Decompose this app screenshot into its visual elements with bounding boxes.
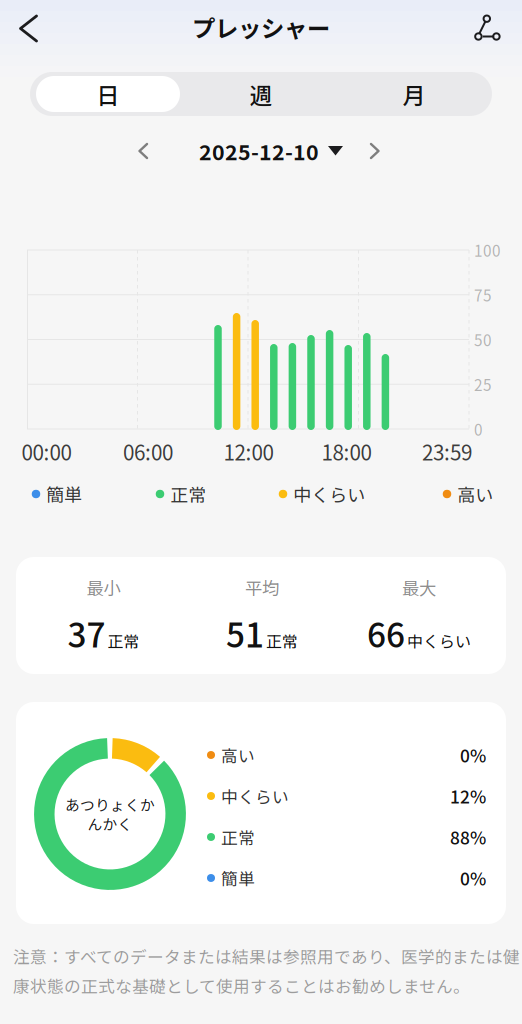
staticText: 0%	[460, 865, 486, 891]
staticText: 00:00	[21, 436, 71, 466]
staticText: 中くらい	[293, 481, 365, 507]
staticText: 日	[96, 78, 119, 110]
staticText: 中くらい	[221, 784, 289, 808]
staticText: 正常	[170, 481, 206, 507]
button[interactable]: Back	[4, 5, 50, 51]
staticText: 簡単	[221, 866, 255, 890]
staticText: 最大	[402, 575, 436, 600]
staticText: 66	[367, 609, 405, 657]
staticText: 12:00	[223, 436, 273, 466]
staticText: 75	[474, 284, 492, 306]
staticText: 正常	[266, 629, 298, 652]
staticText: 18:00	[321, 436, 371, 466]
staticText: 注意：すべてのデータまたは結果は参照用であり、医学的または健	[13, 944, 520, 968]
staticText: 平均	[245, 575, 279, 600]
staticText: 簡単	[46, 481, 82, 507]
button[interactable]: 2025-12-10	[199, 136, 343, 166]
staticText: 週	[249, 78, 272, 110]
staticText: 0%	[460, 742, 486, 768]
button[interactable]: 週	[186, 72, 336, 116]
button[interactable]: 日	[33, 72, 183, 116]
staticText: 50	[474, 328, 492, 351]
staticText: 51	[226, 609, 264, 657]
staticText: 月	[402, 78, 425, 110]
staticText: 12%	[450, 783, 486, 809]
staticText: 25	[474, 373, 492, 395]
button[interactable]: Share	[465, 5, 511, 51]
staticText: 正常	[221, 825, 255, 849]
staticText: 2025-12-10	[199, 136, 319, 166]
staticText: んかく	[87, 813, 132, 834]
staticText: 100	[474, 239, 501, 261]
button[interactable]: 月	[339, 72, 489, 116]
staticText: 88%	[450, 824, 486, 850]
staticText: 0	[474, 418, 483, 440]
staticText: プレッシャー	[192, 10, 330, 44]
staticText: 23:59	[422, 436, 472, 466]
button[interactable]: Next day	[356, 131, 396, 171]
staticText: 37	[67, 609, 105, 657]
staticText: 中くらい	[407, 629, 471, 652]
staticText: 康状態の正式な基礎として使用することはお勧めしません。	[13, 973, 470, 997]
staticText: 最小	[86, 575, 120, 600]
staticText: 高い	[457, 481, 493, 507]
staticText: 正常	[107, 629, 139, 652]
staticText: 高い	[221, 743, 255, 767]
staticText: あつりょくか	[65, 794, 155, 815]
button[interactable]: Previous day	[122, 131, 162, 171]
staticText: 06:00	[123, 436, 173, 466]
